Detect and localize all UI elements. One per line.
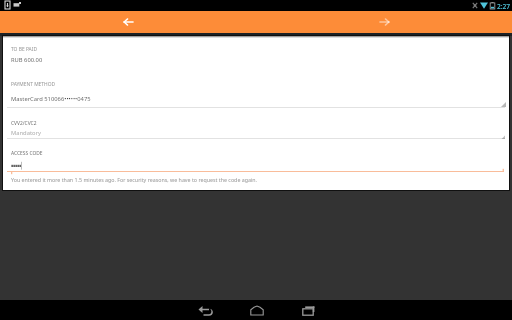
staticText: 2:27 xyxy=(497,2,511,11)
button[interactable]: MasterCard 510066••••••0475 xyxy=(3,93,509,108)
staticText: MasterCard 510066••••••0475 xyxy=(11,95,91,103)
staticText: TO BE PAID xyxy=(11,46,37,53)
staticText: You entered it more than 1.5 minutes ago… xyxy=(11,176,258,183)
button[interactable]: ACCESS CODE xyxy=(3,145,509,171)
staticText: Mandatory xyxy=(11,129,41,137)
staticText: ACCESS CODE xyxy=(11,150,43,157)
button[interactable]: Back xyxy=(118,12,138,32)
button[interactable]: Home xyxy=(242,300,274,320)
button[interactable]: CVV2/CVC2 xyxy=(3,115,509,138)
button[interactable]: Forward xyxy=(374,12,394,32)
staticText: PAYMENT METHOD xyxy=(11,81,56,88)
button[interactable]: Recents xyxy=(294,300,326,320)
staticText: RUB 600.00 xyxy=(11,56,43,64)
button[interactable]: Back xyxy=(190,300,222,320)
staticText: CVV2/CVC2 xyxy=(11,120,37,127)
